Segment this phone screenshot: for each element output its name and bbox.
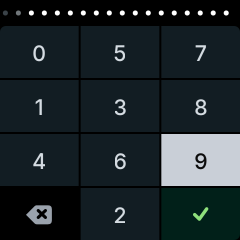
staticText: 0 xyxy=(32,41,46,66)
button[interactable]: 0 xyxy=(0,26,79,78)
staticText: 8 xyxy=(194,95,207,120)
button[interactable]: 8 xyxy=(161,80,240,132)
button[interactable]: 4 xyxy=(0,134,79,186)
button[interactable]: Confirm xyxy=(161,188,240,240)
staticText: 7 xyxy=(195,41,207,66)
staticText: 3 xyxy=(113,95,126,120)
staticText: 2 xyxy=(113,203,126,228)
staticText: 9 xyxy=(194,149,207,174)
staticText: 6 xyxy=(113,149,126,174)
button[interactable]: 2 xyxy=(81,188,159,240)
button[interactable]: 1 xyxy=(0,80,79,132)
staticText: 4 xyxy=(32,149,46,174)
staticText: 5 xyxy=(113,41,126,66)
button[interactable]: 9 xyxy=(161,134,240,186)
button[interactable]: 5 xyxy=(81,26,159,78)
button[interactable]: 6 xyxy=(81,134,159,186)
button[interactable]: Delete xyxy=(0,188,79,240)
staticText: 1 xyxy=(35,95,44,120)
button[interactable]: 3 xyxy=(81,80,159,132)
button[interactable]: 7 xyxy=(161,26,240,78)
